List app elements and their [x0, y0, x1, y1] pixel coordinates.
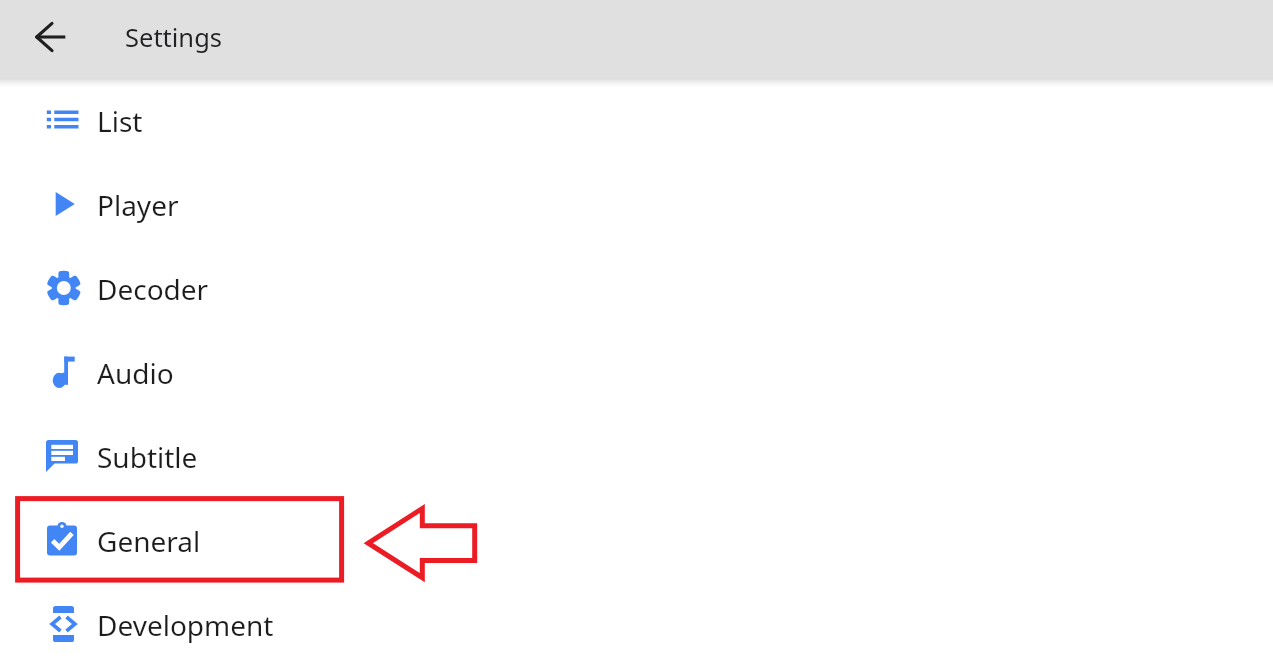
button[interactable]: Subtitle — [0, 414, 1273, 498]
staticText: Decoder — [97, 270, 209, 308]
staticText: Player — [97, 186, 179, 224]
button[interactable]: Development — [0, 582, 1273, 666]
button[interactable]: Audio — [0, 330, 1273, 414]
button[interactable]: Back — [27, 13, 75, 61]
button[interactable]: Player — [0, 162, 1273, 246]
button[interactable]: List — [0, 78, 1273, 162]
staticText: List — [97, 102, 143, 140]
staticText: Development — [97, 606, 274, 644]
staticText: Subtitle — [97, 438, 198, 476]
staticText: Audio — [97, 354, 174, 392]
button[interactable]: General — [0, 498, 1273, 582]
button[interactable]: Decoder — [0, 246, 1273, 330]
staticText: General — [97, 522, 201, 560]
staticText: Settings — [125, 20, 223, 55]
